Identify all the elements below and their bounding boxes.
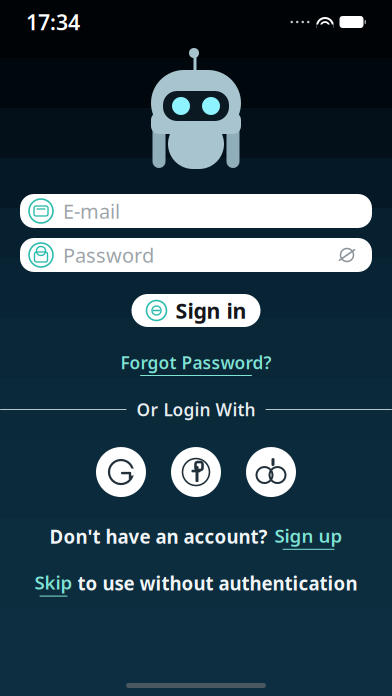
staticText: Or Login With <box>136 398 255 421</box>
staticText: Skip <box>34 570 72 595</box>
staticText: 17:34 <box>26 8 80 36</box>
button[interactable]: Password <box>20 238 372 272</box>
staticText: to use without authentication <box>77 571 357 596</box>
button[interactable]: Sign in with Facebook <box>171 447 221 497</box>
button[interactable]: Skip <box>34 570 72 597</box>
button[interactable]: Sign up <box>274 523 342 550</box>
button[interactable]: Sign in with Apple <box>246 447 296 497</box>
button[interactable]: Forgot Password? <box>120 351 271 376</box>
button[interactable]: Sign in with Google <box>96 447 146 497</box>
button[interactable]: Sign in <box>131 294 260 327</box>
staticText: Don't have an account? <box>49 524 267 549</box>
button[interactable]: E-mail <box>20 194 372 228</box>
staticText: Sign up <box>274 523 342 548</box>
staticText: Forgot Password? <box>120 351 271 374</box>
staticText: E-mail <box>63 198 120 224</box>
staticText: Password <box>63 242 154 268</box>
staticText: Sign in <box>175 296 246 325</box>
